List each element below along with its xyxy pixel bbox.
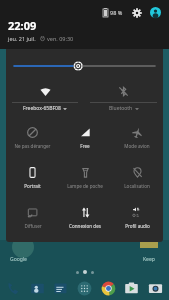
button[interactable]: Freebox-65BF08 (6, 81, 84, 114)
staticText: Keep (143, 256, 155, 263)
staticText: 22:09 (8, 18, 37, 33)
button[interactable]: Mode avion (111, 120, 163, 160)
button[interactable]: Localisation (111, 160, 163, 200)
staticText: Diffuser (24, 223, 42, 229)
staticText: Google (10, 256, 27, 263)
staticText: Localisation (124, 183, 150, 189)
button[interactable]: Free (59, 120, 111, 160)
button[interactable]: User account (149, 6, 162, 19)
button[interactable]: Camera (146, 279, 165, 298)
button[interactable]: Play Store (122, 279, 141, 298)
button[interactable]: Ne pas déranger (6, 120, 59, 160)
staticText: Profil audio (125, 223, 150, 229)
button[interactable]: Phone (4, 279, 23, 298)
button[interactable]: Apps (75, 279, 94, 298)
staticText: Free (80, 143, 90, 149)
button[interactable]: Connexion des données (59, 200, 111, 240)
button[interactable]: Contacts (28, 279, 47, 298)
staticText: ven. 09:30 (47, 35, 74, 42)
staticText: Bluetooth (109, 105, 133, 112)
staticText: jeu. 21 juil. (8, 35, 36, 42)
button[interactable]: Profil audio (111, 200, 163, 240)
button[interactable]: Diffuser (6, 200, 59, 240)
staticText: 98 % (110, 9, 123, 16)
button[interactable]: Lampe de poche (59, 160, 111, 200)
button[interactable]: Chrome (99, 279, 118, 298)
staticText: Connexion des données (61, 223, 109, 229)
button[interactable]: Messages (51, 279, 70, 298)
staticText: Lampe de poche (67, 183, 103, 189)
staticText: Portrait (24, 183, 41, 189)
button[interactable]: Brightness (6, 58, 163, 74)
staticText: Mode avion (124, 143, 150, 149)
staticText: Ne pas déranger (14, 143, 51, 149)
button[interactable]: Bluetooth (84, 81, 163, 114)
button[interactable]: Settings (130, 6, 143, 19)
button[interactable]: Portrait (6, 160, 59, 200)
staticText: Freebox-65BF08 (23, 105, 61, 112)
